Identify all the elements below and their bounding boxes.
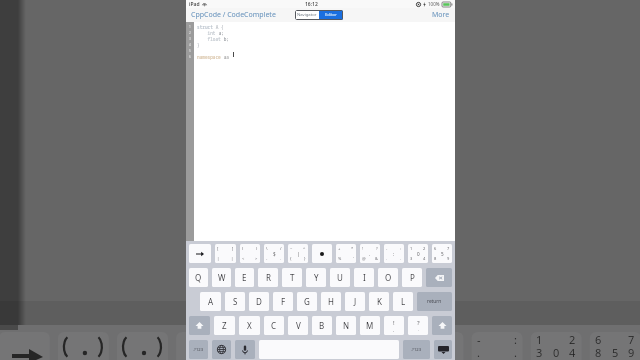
button[interactable]: F	[273, 292, 293, 311]
staticText: aa	[221, 54, 229, 60]
staticText: [	[217, 246, 219, 251]
button[interactable]: 1	[408, 244, 428, 263]
button[interactable]: Y	[306, 268, 326, 287]
staticText: float	[197, 36, 221, 42]
button[interactable]: \	[264, 244, 284, 263]
button[interactable]: Z	[214, 316, 235, 335]
staticText: A	[208, 296, 214, 307]
button[interactable]: !	[384, 316, 404, 335]
staticText: Y	[314, 272, 319, 283]
staticText: 7	[447, 246, 450, 251]
button[interactable]: .?123	[189, 340, 208, 359]
button[interactable]: .?123	[403, 340, 430, 359]
button[interactable]: I	[354, 268, 374, 287]
button[interactable]: M	[360, 316, 380, 335]
staticText: E	[242, 272, 247, 283]
staticText: 2	[569, 332, 576, 347]
staticText: K	[377, 296, 382, 307]
staticText: 7	[628, 332, 635, 347]
staticText: %	[338, 256, 342, 261]
button[interactable]: A	[200, 292, 221, 311]
staticText: .	[514, 345, 517, 360]
staticText: M	[366, 320, 374, 331]
staticText: !	[362, 246, 364, 251]
staticText: 16:12	[305, 1, 318, 8]
button[interactable]: !	[360, 244, 380, 263]
button[interactable]: Dictate	[235, 340, 255, 359]
button[interactable]: P	[402, 268, 422, 287]
staticText: 1	[189, 25, 191, 29]
staticText: -	[386, 246, 388, 251]
button[interactable]: H	[321, 292, 341, 311]
staticText: .	[418, 327, 420, 332]
staticText: W	[218, 272, 226, 283]
staticText: |	[231, 256, 234, 261]
button[interactable]: Change language	[212, 340, 231, 359]
staticText: namespace	[197, 54, 221, 60]
staticText: .?123	[193, 347, 204, 353]
staticText: .	[280, 256, 282, 261]
button[interactable]: K	[369, 292, 389, 311]
staticText: 0	[553, 345, 560, 360]
button[interactable]: X	[239, 316, 260, 335]
staticText: +	[338, 246, 341, 251]
button[interactable]: Backspace	[426, 268, 452, 287]
staticText: Editor	[325, 12, 337, 18]
staticText: 0	[417, 251, 420, 257]
button[interactable]: J	[345, 292, 365, 311]
button[interactable]: CppCode / CodeComplete	[191, 10, 276, 20]
button[interactable]: (	[240, 244, 260, 263]
button[interactable]	[312, 244, 332, 263]
button[interactable]: C	[264, 316, 284, 335]
button[interactable]: [	[215, 244, 236, 263]
staticText: P	[410, 272, 415, 283]
staticText: 1	[410, 246, 413, 251]
button[interactable]: More	[432, 10, 450, 20]
staticText: return	[427, 298, 442, 305]
button[interactable]: L	[393, 292, 413, 311]
staticText: 9	[628, 345, 635, 360]
staticText: 4	[423, 256, 426, 261]
button[interactable]: N	[336, 316, 356, 335]
button[interactable]: return	[417, 292, 452, 311]
button[interactable]: ~	[288, 244, 308, 263]
staticText: $	[273, 251, 276, 257]
button[interactable]: 6	[432, 244, 452, 263]
button[interactable]: Navigator	[295, 10, 319, 20]
staticText: V	[296, 320, 301, 331]
staticText: R	[266, 272, 271, 283]
button[interactable]: Tab	[189, 244, 211, 263]
button[interactable]: T	[282, 268, 302, 287]
button[interactable]: Hide keyboard	[434, 340, 452, 359]
staticText: }	[197, 42, 200, 48]
button[interactable]: E	[235, 268, 254, 287]
staticText: Q	[195, 272, 202, 283]
staticText: .	[386, 256, 388, 261]
button[interactable]: W	[212, 268, 231, 287]
button[interactable]: R	[258, 268, 278, 287]
button[interactable]: O	[378, 268, 398, 287]
staticText: <	[242, 256, 245, 261]
button[interactable]: Shift	[189, 316, 210, 335]
button[interactable]: B	[312, 316, 332, 335]
button[interactable]: -	[384, 244, 404, 263]
button[interactable]: D	[249, 292, 269, 311]
button[interactable]: Editor	[319, 10, 343, 20]
staticText: O	[385, 272, 392, 283]
button[interactable]: Shift	[432, 316, 452, 335]
staticText: 3	[189, 37, 191, 41]
button[interactable]: +	[336, 244, 356, 263]
staticText: ]	[232, 246, 234, 251]
button[interactable]: G	[297, 292, 317, 311]
button[interactable]: V	[288, 316, 308, 335]
staticText: @	[362, 256, 366, 261]
staticText: 5	[612, 345, 619, 360]
button[interactable]: U	[330, 268, 350, 287]
staticText: /	[280, 246, 282, 251]
button[interactable]: S	[225, 292, 245, 311]
staticText: 4	[569, 345, 576, 360]
staticText: F	[281, 296, 286, 307]
button[interactable]: ?	[408, 316, 428, 335]
button[interactable]: Q	[189, 268, 208, 287]
